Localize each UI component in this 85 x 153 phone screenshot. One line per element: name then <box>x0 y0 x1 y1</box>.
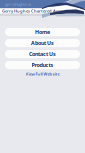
staticText: Gerry Hughes Chartered Accountants <box>2 8 79 14</box>
button[interactable]: Home <box>5 28 80 36</box>
staticText: Products <box>31 61 53 69</box>
staticText: Contact Us <box>29 50 56 58</box>
staticText: About Us <box>31 39 54 47</box>
button[interactable]: Contact Us <box>5 50 80 58</box>
staticText: gerryhughes.ie <box>5 1 31 7</box>
button[interactable]: Products <box>5 61 80 69</box>
staticText: View Full Website <box>25 71 59 77</box>
staticText: Home <box>35 28 50 36</box>
button[interactable]: View Full Website <box>5 71 80 77</box>
button[interactable]: About Us <box>5 39 80 47</box>
